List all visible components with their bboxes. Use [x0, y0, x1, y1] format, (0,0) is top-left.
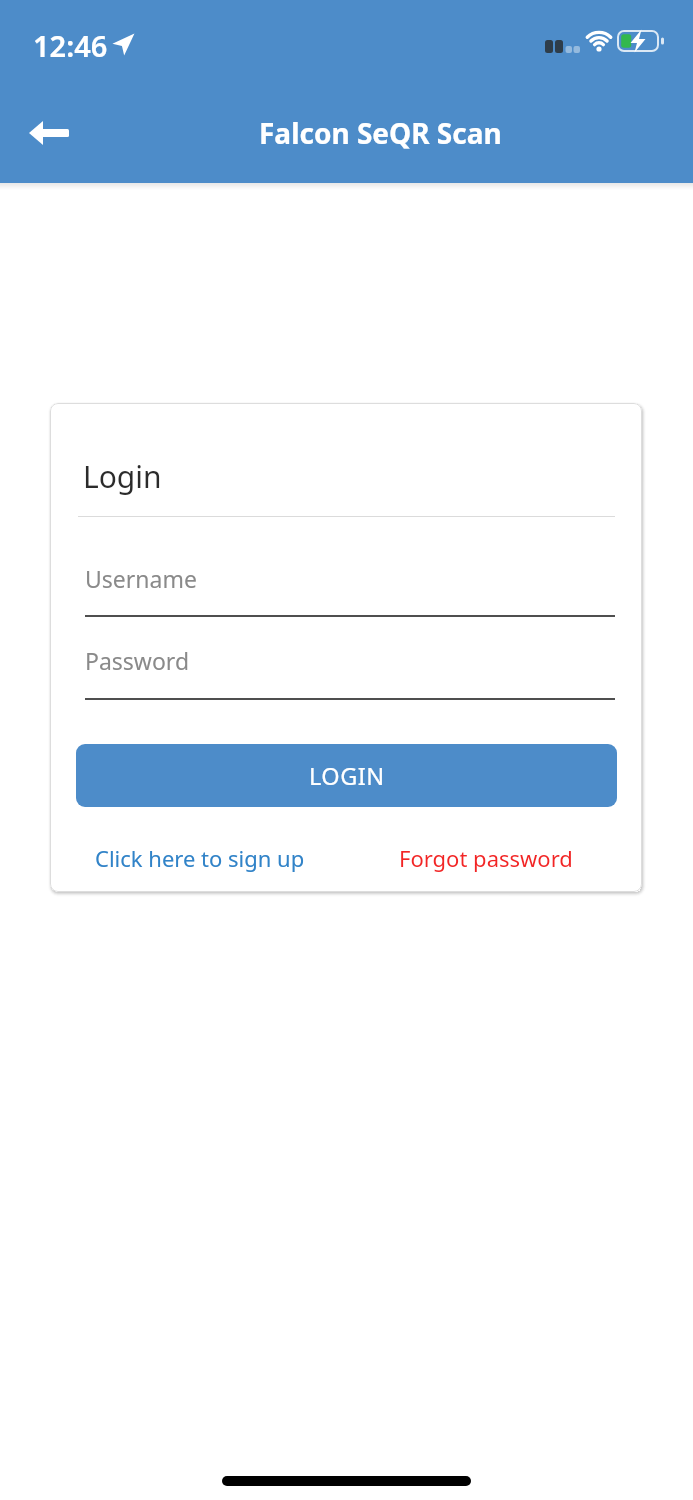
staticText: Click here to sign up — [95, 843, 305, 873]
staticText: Falcon SeQR Scan — [259, 114, 502, 152]
button[interactable]: Click here to sign up — [95, 841, 375, 875]
staticText: Password — [85, 645, 190, 675]
button[interactable]: LOGIN — [76, 744, 617, 807]
staticText: Login — [83, 456, 162, 497]
button[interactable]: Forgot password — [370, 841, 573, 875]
staticText: 12:46 — [33, 26, 108, 60]
staticText: Username — [85, 563, 197, 593]
staticText: Forgot password — [399, 843, 573, 873]
staticText: LOGIN — [309, 760, 385, 792]
button[interactable] — [14, 108, 84, 158]
